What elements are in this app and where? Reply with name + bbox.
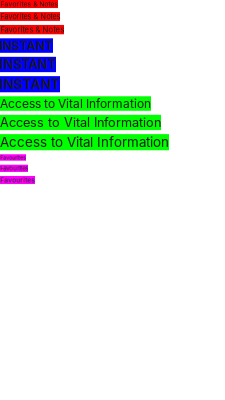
staticText: Access to Vital Information — [0, 134, 169, 150]
staticText: Favourites — [0, 176, 35, 184]
staticText: Access to Vital Information — [0, 96, 151, 111]
staticText: INSTANT — [0, 57, 56, 72]
staticText: Favorites & Notes — [0, 0, 58, 8]
staticText: Access to Vital Information — [0, 115, 161, 130]
staticText: Favourites — [0, 165, 28, 172]
staticText: INSTANT — [0, 38, 53, 53]
staticText: INSTANT — [0, 76, 60, 92]
staticText: Favourites — [0, 154, 26, 161]
staticText: Favorites & Notes — [0, 25, 64, 34]
staticText: Favorites & Notes — [0, 12, 60, 21]
